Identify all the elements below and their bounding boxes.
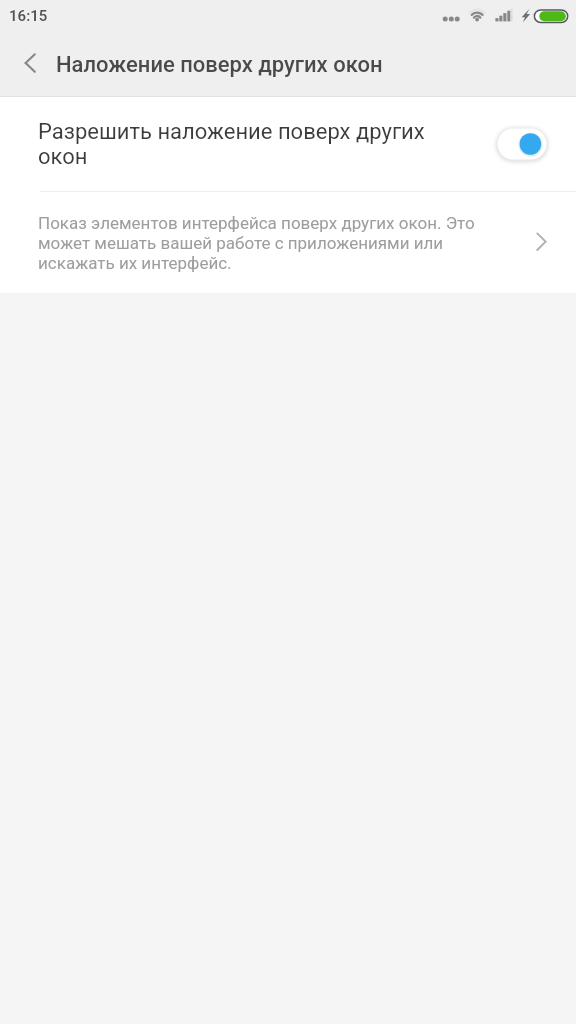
staticText: Наложение поверх других окон bbox=[56, 52, 383, 78]
button[interactable]: Разрешить наложение поверх других окон bbox=[0, 97, 576, 191]
staticText: 16:15 bbox=[9, 7, 48, 25]
button[interactable]: Allow display over other apps bbox=[490, 123, 550, 165]
button[interactable]: Back bbox=[0, 32, 56, 97]
button[interactable]: More details bbox=[530, 192, 576, 293]
button[interactable]: Показ элементов интерфейса поверх других… bbox=[0, 192, 576, 293]
staticText: Разрешить наложение поверх других окон bbox=[38, 119, 438, 169]
staticText: Показ элементов интерфейса поверх других… bbox=[38, 213, 488, 273]
